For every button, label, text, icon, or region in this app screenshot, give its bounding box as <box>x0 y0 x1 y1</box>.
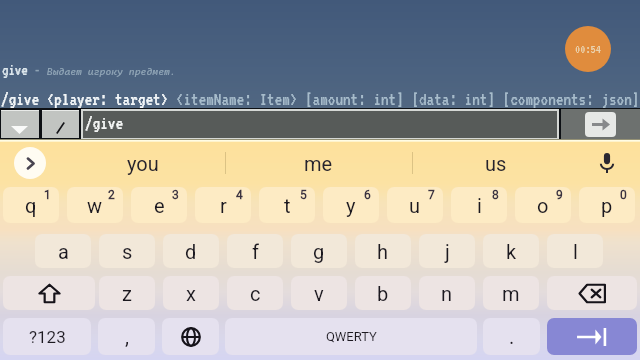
button[interactable]: e <box>131 187 187 223</box>
button[interactable]: Send command <box>585 112 616 137</box>
staticText: you <box>127 152 159 175</box>
staticText: p <box>601 194 613 217</box>
staticText: h <box>377 240 389 263</box>
staticText: j <box>445 240 450 263</box>
button[interactable]: QWERTY <box>225 318 477 355</box>
staticText: s <box>122 240 133 263</box>
button[interactable]: Voice input <box>590 146 624 180</box>
button[interactable]: us <box>412 142 580 184</box>
staticText: 7 <box>428 188 435 202</box>
staticText: r <box>220 194 227 217</box>
staticText: ?123 <box>29 327 66 347</box>
staticText: 0 <box>620 188 627 202</box>
staticText: 9 <box>556 188 563 202</box>
button[interactable]: k <box>483 234 539 268</box>
staticText: i <box>477 194 482 217</box>
button[interactable]: t <box>259 187 315 223</box>
staticText: f <box>252 240 259 263</box>
staticText: d <box>185 240 197 263</box>
button[interactable]: Backspace <box>547 276 637 310</box>
staticText: c <box>250 282 261 305</box>
button[interactable]: y <box>323 187 379 223</box>
button[interactable]: . <box>483 318 540 355</box>
staticText: v <box>314 282 324 305</box>
button[interactable]: z <box>99 276 155 310</box>
button[interactable]: p <box>579 187 635 223</box>
button[interactable]: ?123 <box>3 318 91 355</box>
staticText: a <box>58 240 69 263</box>
staticText: 6 <box>364 188 371 202</box>
button[interactable]: g <box>291 234 347 268</box>
button[interactable]: me <box>225 142 412 184</box>
button[interactable]: i <box>451 187 507 223</box>
staticText: , <box>125 325 129 348</box>
button[interactable]: /give <box>81 109 559 139</box>
staticText: g <box>313 240 325 263</box>
staticText: q <box>25 194 37 217</box>
button[interactable]: Switch keyboard language <box>162 318 219 355</box>
staticText: give - Выдает игроку предмет. <box>2 62 176 78</box>
button[interactable]: v <box>291 276 347 310</box>
staticText: m <box>502 282 520 305</box>
button[interactable]: More suggestions <box>14 147 46 179</box>
staticText: y <box>346 194 356 217</box>
button[interactable]: Enter <box>547 318 637 355</box>
staticText: t <box>284 194 291 217</box>
staticText: us <box>485 152 507 175</box>
button[interactable]: b <box>355 276 411 310</box>
button[interactable]: c <box>227 276 283 310</box>
button[interactable]: r <box>195 187 251 223</box>
button[interactable]: l <box>547 234 603 268</box>
button[interactable]: , <box>98 318 155 355</box>
button[interactable]: Shift <box>3 276 95 310</box>
staticText: /give <player: target> <itemName: Item> … <box>1 90 640 109</box>
button[interactable] <box>42 110 79 138</box>
button[interactable]: q <box>3 187 59 223</box>
button[interactable]: s <box>99 234 155 268</box>
button[interactable]: o <box>515 187 571 223</box>
button[interactable]: a <box>35 234 91 268</box>
staticText: 2 <box>108 188 115 202</box>
staticText: QWERTY <box>326 329 377 344</box>
staticText: e <box>154 194 165 217</box>
staticText: u <box>409 194 421 217</box>
staticText: l <box>573 240 578 263</box>
button[interactable]: h <box>355 234 411 268</box>
staticText: z <box>122 282 132 305</box>
staticText: n <box>441 282 453 305</box>
button[interactable]: n <box>419 276 475 310</box>
button[interactable]: Command history <box>1 110 39 138</box>
button[interactable]: f <box>227 234 283 268</box>
button[interactable]: m <box>483 276 539 310</box>
staticText: k <box>506 240 517 263</box>
staticText: 4 <box>236 188 243 202</box>
button[interactable]: j <box>419 234 475 268</box>
staticText: /give <box>85 114 124 133</box>
button[interactable]: you <box>60 142 225 184</box>
staticText: . <box>509 325 515 348</box>
button[interactable]: w <box>67 187 123 223</box>
button[interactable]: d <box>163 234 219 268</box>
staticText: x <box>186 282 196 305</box>
staticText: o <box>537 194 549 217</box>
staticText: 00:54 <box>575 43 602 56</box>
staticText: b <box>377 282 389 305</box>
staticText: 8 <box>492 188 499 202</box>
staticText: w <box>87 194 103 217</box>
button[interactable]: u <box>387 187 443 223</box>
button[interactable]: x <box>163 276 219 310</box>
staticText: me <box>304 152 333 175</box>
staticText: 1 <box>44 188 51 202</box>
staticText: 5 <box>300 188 307 202</box>
staticText: 3 <box>172 188 179 202</box>
